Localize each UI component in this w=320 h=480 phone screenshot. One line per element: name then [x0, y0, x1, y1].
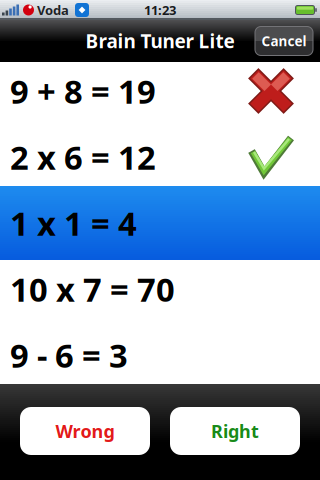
button[interactable]: Wrong	[20, 407, 150, 455]
staticText: Brain Tuner Lite	[85, 28, 234, 54]
staticText: 9 - 6 = 3	[10, 333, 128, 377]
staticText: 1 x 1 = 4	[10, 201, 137, 245]
staticText: 2 x 6 = 12	[10, 135, 156, 179]
staticText: 9 + 8 = 19	[10, 69, 156, 113]
staticText: Wrong	[55, 419, 114, 443]
staticText: Right	[211, 419, 259, 443]
staticText: Voda	[37, 1, 69, 19]
button[interactable]: Right	[170, 407, 300, 455]
staticText: 11:23	[144, 1, 176, 19]
staticText: 10 x 7 = 70	[10, 267, 175, 311]
button[interactable]: Cancel	[255, 26, 313, 55]
staticText: Cancel	[261, 32, 306, 50]
